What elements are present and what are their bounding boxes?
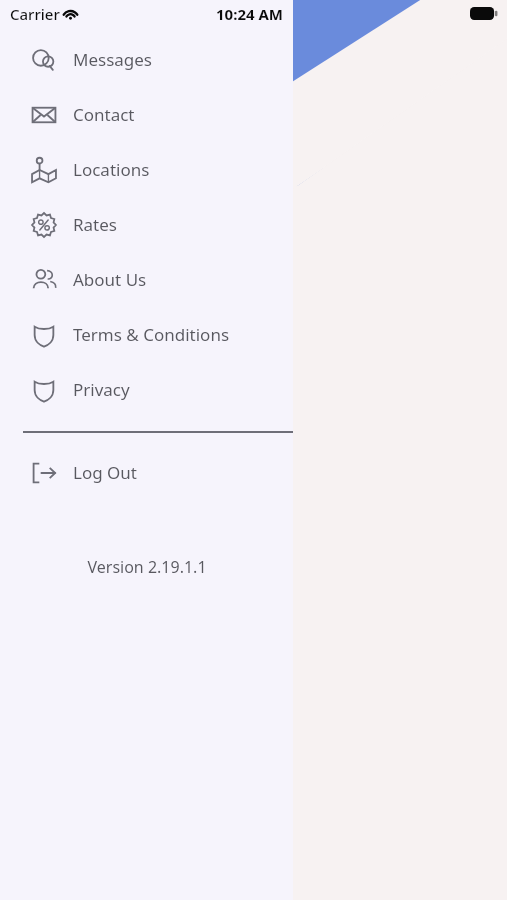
staticText: Contact: [73, 103, 135, 126]
staticText: Carrier: [10, 4, 60, 24]
button[interactable]: Messages: [0, 32, 293, 87]
button[interactable]: Rates: [0, 197, 293, 252]
staticText: Locations: [73, 158, 150, 181]
button[interactable]: About Us: [0, 252, 293, 307]
staticText: Version 2.19.1.1: [87, 556, 207, 578]
staticText: Terms & Conditions: [73, 323, 230, 346]
staticText: Messages: [73, 48, 153, 71]
button[interactable]: Privacy: [0, 362, 293, 417]
staticText: 10:24 AM: [216, 4, 283, 24]
button[interactable]: Terms & Conditions: [0, 307, 293, 362]
staticText: Rates: [73, 213, 117, 236]
staticText: Privacy: [73, 378, 130, 401]
button[interactable]: Log Out: [0, 445, 293, 500]
staticText: Log Out: [73, 461, 137, 484]
button[interactable]: Deposit: [272, 830, 372, 900]
button[interactable]: Contact: [0, 87, 293, 142]
button[interactable]: Locations: [0, 142, 293, 197]
staticText: About Us: [73, 268, 147, 291]
